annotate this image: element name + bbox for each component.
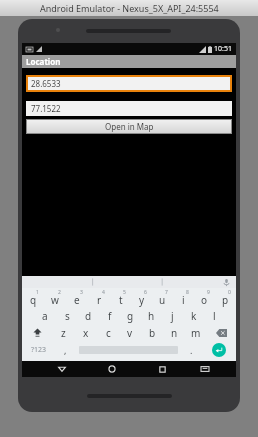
staticText: p xyxy=(222,293,229,307)
button[interactable]: 2 xyxy=(44,288,66,307)
staticText: 0 xyxy=(228,289,231,296)
button[interactable]: Enter xyxy=(212,343,226,357)
staticText: ?123 xyxy=(31,345,47,355)
staticText: Location xyxy=(26,56,61,67)
staticText: d xyxy=(85,309,92,323)
button[interactable]: 7 xyxy=(152,288,173,307)
staticText: 6 xyxy=(144,289,147,296)
button[interactable]: f xyxy=(99,307,120,324)
staticText: w xyxy=(51,293,59,307)
button[interactable]: h xyxy=(141,307,162,324)
staticText: b xyxy=(149,326,156,340)
button[interactable]: s xyxy=(56,307,78,324)
button[interactable]: Back xyxy=(36,361,87,377)
button[interactable]: 3 xyxy=(66,288,88,307)
button[interactable]: g xyxy=(120,307,141,324)
button[interactable]: 5 xyxy=(110,288,131,307)
button[interactable]: 1 xyxy=(22,288,44,307)
staticText: 8 xyxy=(186,289,189,296)
staticText: e xyxy=(74,293,80,307)
button[interactable]: Voice input xyxy=(222,278,231,287)
staticText: u xyxy=(159,293,166,307)
staticText: c xyxy=(106,326,111,340)
button[interactable]: d xyxy=(78,307,99,324)
staticText: n xyxy=(171,326,178,340)
staticText: 9 xyxy=(207,289,210,296)
staticText: j xyxy=(171,309,174,323)
staticText: y xyxy=(139,293,145,307)
staticText: 3 xyxy=(80,289,83,296)
staticText: 1 xyxy=(36,289,39,296)
staticText: 77.1522 xyxy=(31,103,61,114)
staticText: r xyxy=(97,293,102,307)
staticText: Android Emulator - Nexus_5X_API_24:5554 xyxy=(40,2,219,14)
button[interactable]: j xyxy=(162,307,183,324)
button[interactable]: b xyxy=(141,324,163,341)
button[interactable]: k xyxy=(183,307,204,324)
staticText: q xyxy=(30,293,37,307)
staticText: l xyxy=(213,309,216,323)
staticText: v xyxy=(127,326,133,340)
button[interactable]: . xyxy=(181,341,202,359)
button[interactable]: Recents xyxy=(137,361,187,377)
button[interactable]: 4 xyxy=(88,288,110,307)
button[interactable]: z xyxy=(52,324,75,341)
button[interactable]: l xyxy=(204,307,225,324)
button[interactable]: x xyxy=(75,324,97,341)
button[interactable]: , xyxy=(55,341,76,359)
button[interactable]: Open in Map xyxy=(26,119,232,134)
staticText: x xyxy=(83,326,89,340)
button[interactable]: 28.6533 xyxy=(26,75,232,92)
staticText: 7 xyxy=(165,289,168,296)
button[interactable]: Hide keyboard xyxy=(187,361,222,377)
staticText: z xyxy=(61,326,66,340)
staticText: 2 xyxy=(58,289,61,296)
button[interactable]: m xyxy=(185,324,207,341)
staticText: g xyxy=(127,309,134,323)
staticText: t xyxy=(119,293,123,307)
staticText: h xyxy=(148,309,155,323)
button[interactable]: ?123 xyxy=(22,341,55,359)
button[interactable]: 6 xyxy=(131,288,152,307)
staticText: 28.6533 xyxy=(31,78,61,89)
button[interactable]: v xyxy=(119,324,141,341)
button[interactable]: 9 xyxy=(194,288,215,307)
staticText: o xyxy=(201,293,208,307)
staticText: m xyxy=(191,326,201,340)
button[interactable]: 8 xyxy=(173,288,194,307)
button[interactable]: 77.1522 xyxy=(26,101,232,116)
staticText: 5 xyxy=(123,289,126,296)
staticText: Open in Map xyxy=(105,121,154,132)
staticText: k xyxy=(191,309,197,323)
staticText: f xyxy=(108,309,112,323)
staticText: a xyxy=(42,309,48,323)
staticText: . xyxy=(190,344,193,356)
button[interactable]: a xyxy=(34,307,56,324)
button[interactable]: Shift xyxy=(22,324,52,341)
staticText: s xyxy=(65,309,70,323)
staticText: i xyxy=(182,293,185,307)
staticText: 10:51 xyxy=(214,44,232,54)
button[interactable]: c xyxy=(97,324,119,341)
button[interactable]: 0 xyxy=(215,288,236,307)
button[interactable]: n xyxy=(163,324,185,341)
button[interactable]: Home xyxy=(87,361,137,377)
button[interactable]: Backspace xyxy=(207,324,236,341)
staticText: , xyxy=(64,344,67,356)
staticText: 4 xyxy=(102,289,105,296)
